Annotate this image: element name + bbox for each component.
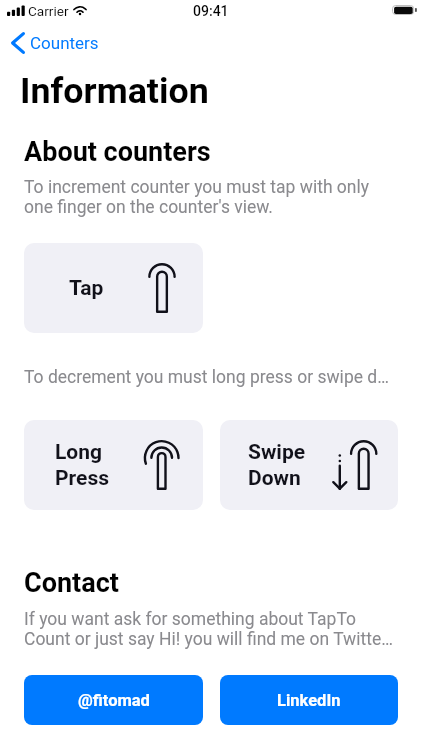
- other: Long press gesture: [144, 440, 180, 490]
- staticText: Carrier: [28, 3, 69, 19]
- staticText: Tap: [69, 276, 104, 301]
- button[interactable]: @fitomad: [24, 675, 203, 725]
- staticText: Contact: [24, 567, 119, 599]
- button[interactable]: Swipe Down: [220, 420, 398, 510]
- staticText: LinkedIn: [277, 691, 341, 710]
- staticText: 09:41: [193, 3, 229, 19]
- staticText: @fitomad: [78, 691, 150, 710]
- button[interactable]: LinkedIn: [220, 675, 398, 725]
- other: Tap gesture: [148, 263, 176, 313]
- staticText: If you want ask for something about TapT…: [24, 609, 398, 649]
- button[interactable]: Counters: [11, 32, 99, 54]
- staticText: Information: [20, 70, 209, 112]
- staticText: Swipe Down: [248, 440, 306, 490]
- button[interactable]: Tap: [24, 243, 203, 333]
- staticText: To decrement you must long press or swip…: [24, 367, 398, 388]
- button[interactable]: Long Press: [24, 420, 203, 510]
- staticText: About counters: [24, 136, 211, 168]
- staticText: To increment counter you must tap with o…: [24, 177, 376, 217]
- other: Swipe down gesture: [333, 440, 377, 490]
- staticText: Long Press: [55, 440, 109, 490]
- staticText: Counters: [30, 33, 99, 53]
